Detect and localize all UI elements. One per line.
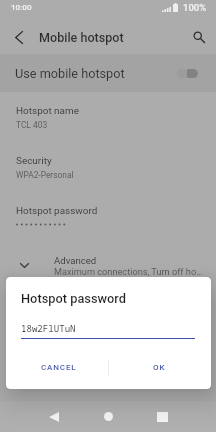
staticText: Hotspot name	[16, 105, 79, 117]
staticText: OK	[153, 363, 166, 372]
button[interactable]: CANCEL	[8, 354, 110, 380]
button[interactable]: Search	[181, 20, 215, 54]
staticText: TCL 403	[16, 120, 48, 130]
staticText: 10:00	[11, 2, 32, 11]
button[interactable]: Home	[90, 401, 126, 432]
staticText: 100%	[183, 2, 207, 13]
button[interactable]: Navigate up	[2, 20, 36, 54]
button[interactable]: Hotspot password	[0, 201, 216, 251]
staticText: Security	[16, 155, 52, 167]
staticText: CANCEL	[41, 363, 77, 372]
staticText: Hotspot password	[21, 291, 126, 306]
staticText: 18w2FlUTuN	[21, 322, 76, 334]
button[interactable]: OK	[108, 354, 210, 380]
staticText: Advanced	[54, 255, 97, 266]
button[interactable]: Security	[0, 151, 216, 201]
button[interactable]: Recent apps	[144, 401, 180, 432]
staticText: Hotspot password	[16, 205, 98, 217]
button[interactable]: Advanced	[0, 251, 216, 291]
staticText: Use mobile hotspot	[15, 66, 125, 81]
button[interactable]: Hotspot name	[0, 101, 216, 151]
button[interactable]: Use mobile hotspot	[0, 54, 216, 92]
staticText: Maximum connections, Turn off ho…	[54, 266, 203, 277]
staticText: Mobile hotspot	[39, 30, 124, 45]
button[interactable]: Back	[36, 401, 72, 432]
staticText: WPA2-Personal	[16, 170, 74, 180]
